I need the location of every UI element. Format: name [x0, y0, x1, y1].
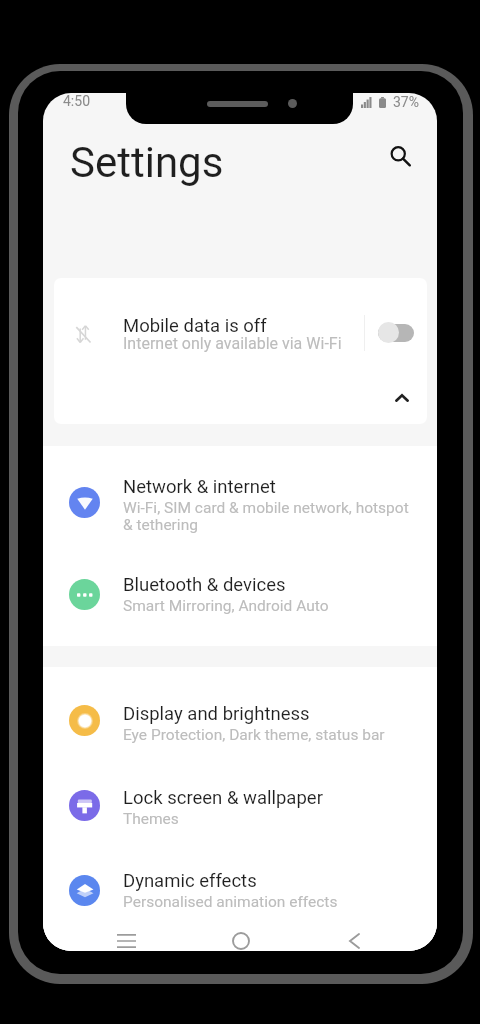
button[interactable]: Back [324, 923, 385, 951]
button[interactable]: Home [210, 923, 271, 951]
button[interactable]: Mobile data is off [54, 278, 427, 424]
staticText: 37% [393, 94, 419, 110]
staticText: Dynamic effects [123, 870, 257, 892]
staticText: Eye Protection, Dark theme, status bar [123, 726, 385, 744]
button[interactable]: Collapse [385, 381, 419, 415]
staticText: Settings [70, 138, 224, 187]
button[interactable]: Search [382, 138, 418, 174]
staticText: Wi-Fi, SIM card & mobile network, hotspo… [123, 499, 409, 534]
staticText: Personalised animation effects [123, 893, 338, 911]
button[interactable]: Recents [96, 923, 157, 951]
staticText: Themes [123, 810, 179, 828]
staticText: Network & internet [123, 476, 276, 498]
button[interactable]: Bluetooth & devices [43, 544, 437, 646]
staticText: Bluetooth & devices [123, 574, 286, 596]
staticText: Internet only available via Wi-Fi [123, 334, 342, 353]
button[interactable]: Mobile data toggle [378, 322, 415, 343]
button[interactable]: Network & internet [43, 446, 437, 544]
button[interactable]: Dynamic effects [43, 835, 437, 925]
button[interactable]: Lock screen & wallpaper [43, 752, 437, 835]
staticText: Lock screen & wallpaper [123, 787, 323, 809]
staticText: Display and brightness [123, 703, 310, 725]
staticText: Smart Mirroring, Android Auto [123, 597, 329, 615]
staticText: Mobile data is off [123, 315, 267, 337]
staticText: 4:50 [63, 93, 90, 109]
button[interactable]: Display and brightness [43, 667, 437, 752]
